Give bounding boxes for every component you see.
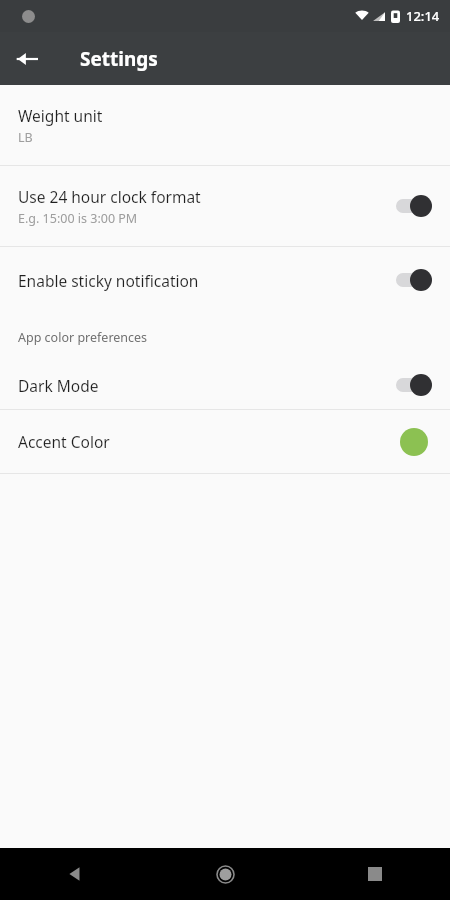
button[interactable]: Back xyxy=(0,848,150,900)
staticText: Use 24 hour clock format xyxy=(18,186,201,207)
button[interactable]: Dark Mode xyxy=(0,361,450,409)
button[interactable]: Recents xyxy=(300,848,450,900)
button[interactable]: Accent Color xyxy=(0,410,450,473)
button[interactable]: Use 24 hour clock format xyxy=(0,166,450,246)
staticText: Dark Mode xyxy=(18,375,99,396)
button[interactable]: Back xyxy=(0,32,53,85)
button[interactable]: Weight unit xyxy=(0,85,450,165)
staticText: App color preferences xyxy=(18,329,148,346)
staticText: LB xyxy=(18,129,33,146)
staticText: E.g. 15:00 is 3:00 PM xyxy=(18,210,138,227)
button[interactable]: Enable sticky notification xyxy=(0,247,450,313)
staticText: Enable sticky notification xyxy=(18,270,199,291)
staticText: Settings xyxy=(80,46,158,72)
staticText: Weight unit xyxy=(18,105,103,126)
staticText: Accent Color xyxy=(18,431,110,452)
button[interactable]: Home xyxy=(150,848,300,900)
staticText: 12:14 xyxy=(406,7,440,25)
